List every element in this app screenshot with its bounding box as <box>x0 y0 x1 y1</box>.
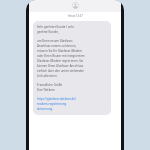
staticText: um Ihren neuen Glasfaser- <box>37 39 74 43</box>
staticText: Anschluss nutzen zu können, <box>37 44 77 48</box>
staticText: Freundliche Grüße <box>37 83 63 87</box>
staticText: geehrte Kundin, <box>37 30 59 34</box>
staticText: Ihre Telekom <box>37 88 55 92</box>
staticText: Link aktivieren. <box>37 74 58 78</box>
button[interactable]: modem-registrierung <box>37 102 89 106</box>
staticText: oder Ihren Router mit integriertem <box>37 54 85 58</box>
staticText: können Ihren Glasfaser-Anschluss <box>37 64 84 68</box>
staticText: https://glasfaser.telekom.de/ <box>37 97 76 101</box>
button[interactable]: https://glasfaser.telekom.de/ <box>37 97 107 101</box>
button[interactable]: Contact details <box>29 0 121 12</box>
staticText: müssen Sie Ihr Glasfaser-Modem <box>37 49 82 53</box>
button[interactable]: Sehr geehrter Kunde / sehr <box>33 21 111 115</box>
staticText: Glasfaser-Modem registrieren. Sie <box>37 59 84 63</box>
staticText: Sehr geehrter Kunde / sehr <box>37 25 74 29</box>
staticText: einfach über den unten stehenden <box>37 69 85 73</box>
staticText: modem-registrierung <box>37 102 67 106</box>
staticText: Heute 14:37 <box>68 14 83 18</box>
button[interactable]: aktivierung <box>37 107 73 111</box>
staticText: aktivierung <box>37 107 53 111</box>
